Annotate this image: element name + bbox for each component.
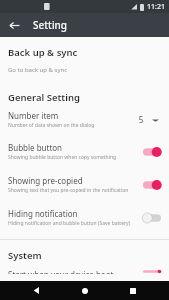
button[interactable]: Toggle on [141,178,163,192]
button[interactable]: Back [24,281,48,300]
staticText: Hiding notification and bubble button (S… [8,220,131,227]
button[interactable]: Bubble button [0,135,169,168]
staticText: 11:21 [147,2,165,12]
button[interactable]: Recents [121,281,145,300]
button[interactable]: Go to back up & sync [0,59,169,81]
button[interactable]: Toggle off [141,211,163,225]
staticText: Setting [33,18,68,32]
staticText: System [8,249,42,262]
staticText: Showing text that you pre-copied in the … [8,187,129,194]
staticText: 5 [133,114,149,125]
button[interactable]: Toggle on [141,269,163,274]
button[interactable]: Toggle on [141,145,163,159]
staticText: Bubble button [8,142,63,153]
staticText: Go to back up & sync [8,66,68,74]
button[interactable]: Home [73,281,97,300]
button[interactable]: Start when your device boot [0,262,169,281]
staticText: General Setting [8,91,80,104]
staticText: Hiding notification [8,208,78,219]
button[interactable]: Hiding notification [0,201,169,234]
staticText: Start when your device boot [8,269,114,274]
button[interactable]: Number item [0,104,169,135]
staticText: Number of data shown on the dialog [8,122,95,129]
staticText: Number item [8,110,59,121]
button[interactable]: Open dropdown [149,114,161,126]
staticText: Showing pre-copied [8,175,83,186]
staticText: Showing bubble button when copy somethin… [8,154,117,161]
button[interactable]: Showing pre-copied [0,168,169,201]
staticText: Back up & sync [8,46,78,59]
button[interactable]: Back [4,15,24,35]
